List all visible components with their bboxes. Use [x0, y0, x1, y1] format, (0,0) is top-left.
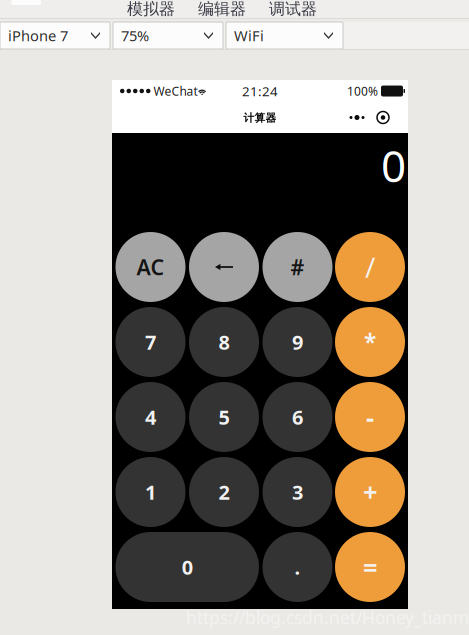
- button[interactable]: 2: [189, 457, 259, 527]
- button[interactable]: 6: [262, 382, 332, 452]
- button[interactable]: =: [335, 532, 405, 602]
- button[interactable]: 1: [115, 457, 185, 527]
- staticText: 计算器: [243, 111, 276, 124]
- button[interactable]: 7: [115, 307, 185, 377]
- staticText: 100%: [347, 83, 378, 99]
- staticText: 5: [218, 404, 229, 430]
- staticText: /: [365, 248, 375, 286]
- button[interactable]: 模拟器: [127, 0, 175, 18]
- button[interactable]: 75%: [113, 22, 223, 49]
- staticText: WiFi: [234, 26, 264, 45]
- staticText: 75%: [121, 26, 149, 45]
- staticText: 9: [292, 329, 303, 355]
- button[interactable]: -: [335, 382, 405, 452]
- staticText: .: [294, 554, 300, 580]
- button[interactable]: Backspace: [189, 232, 259, 302]
- button[interactable]: 编辑器: [198, 0, 246, 18]
- staticText: 1: [145, 479, 156, 505]
- button[interactable]: WiFi: [226, 22, 343, 49]
- button[interactable]: 5: [189, 382, 259, 452]
- staticText: 7: [145, 329, 156, 355]
- button[interactable]: 9: [262, 307, 332, 377]
- staticText: +: [363, 475, 377, 509]
- button[interactable]: 3: [262, 457, 332, 527]
- button[interactable]: Close: [375, 106, 391, 128]
- button[interactable]: +: [335, 457, 405, 527]
- staticText: 8: [218, 329, 229, 355]
- staticText: AC: [136, 253, 164, 281]
- staticText: 模拟器: [127, 0, 175, 19]
- button[interactable]: 4: [115, 382, 185, 452]
- staticText: 编辑器: [198, 0, 246, 19]
- staticText: *: [364, 327, 376, 357]
- button[interactable]: 调试器: [269, 0, 317, 18]
- button[interactable]: iPhone 7: [0, 22, 110, 49]
- staticText: 2: [218, 479, 229, 505]
- staticText: https://blog.csdn.net/Honey_tianming: [186, 606, 469, 629]
- button[interactable]: More: [347, 106, 367, 128]
- staticText: WeChat: [150, 83, 197, 99]
- staticText: 6: [292, 404, 303, 430]
- button[interactable]: /: [335, 232, 405, 302]
- staticText: 3: [292, 479, 303, 505]
- button[interactable]: .: [262, 532, 332, 602]
- staticText: 4: [145, 404, 156, 430]
- staticText: #: [290, 253, 304, 281]
- button[interactable]: 0: [115, 532, 259, 602]
- button[interactable]: #: [262, 232, 332, 302]
- button[interactable]: *: [335, 307, 405, 377]
- staticText: -: [366, 400, 374, 434]
- button[interactable]: 8: [189, 307, 259, 377]
- staticText: 0: [381, 136, 406, 194]
- button[interactable]: AC: [115, 232, 185, 302]
- staticText: 21:24: [242, 82, 278, 100]
- staticText: iPhone 7: [8, 26, 68, 45]
- staticText: =: [363, 550, 377, 584]
- staticText: 调试器: [269, 0, 317, 19]
- staticText: 0: [182, 554, 193, 580]
